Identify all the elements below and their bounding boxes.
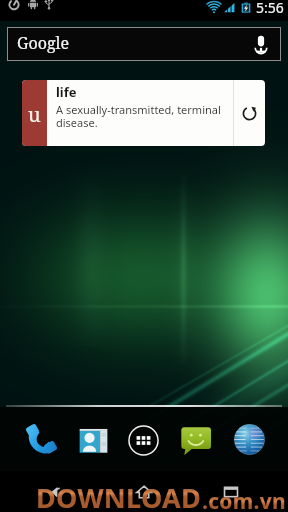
staticText: 5:56 [256,0,284,17]
button[interactable]: Apps [122,419,165,462]
button[interactable]: Refresh [234,80,265,146]
button[interactable]: Phone [19,419,62,462]
staticText: DOWNLOAD [36,479,202,512]
staticText: .com.vn [202,487,286,512]
button[interactable]: Voice search [249,32,273,56]
staticText: A sexually-transmitted, terminal disease… [56,102,229,130]
staticText: Google [17,32,70,54]
button[interactable]: u [22,80,265,146]
button[interactable]: Recents [201,471,261,512]
button[interactable]: Back [27,471,87,512]
staticText: life [56,83,77,101]
staticText: u [28,101,41,128]
button[interactable]: Contacts [72,419,115,462]
button[interactable]: Home [114,471,174,512]
button[interactable]: Browser [228,418,271,461]
button[interactable]: Messaging [175,419,218,462]
button[interactable]: Google [7,27,281,61]
